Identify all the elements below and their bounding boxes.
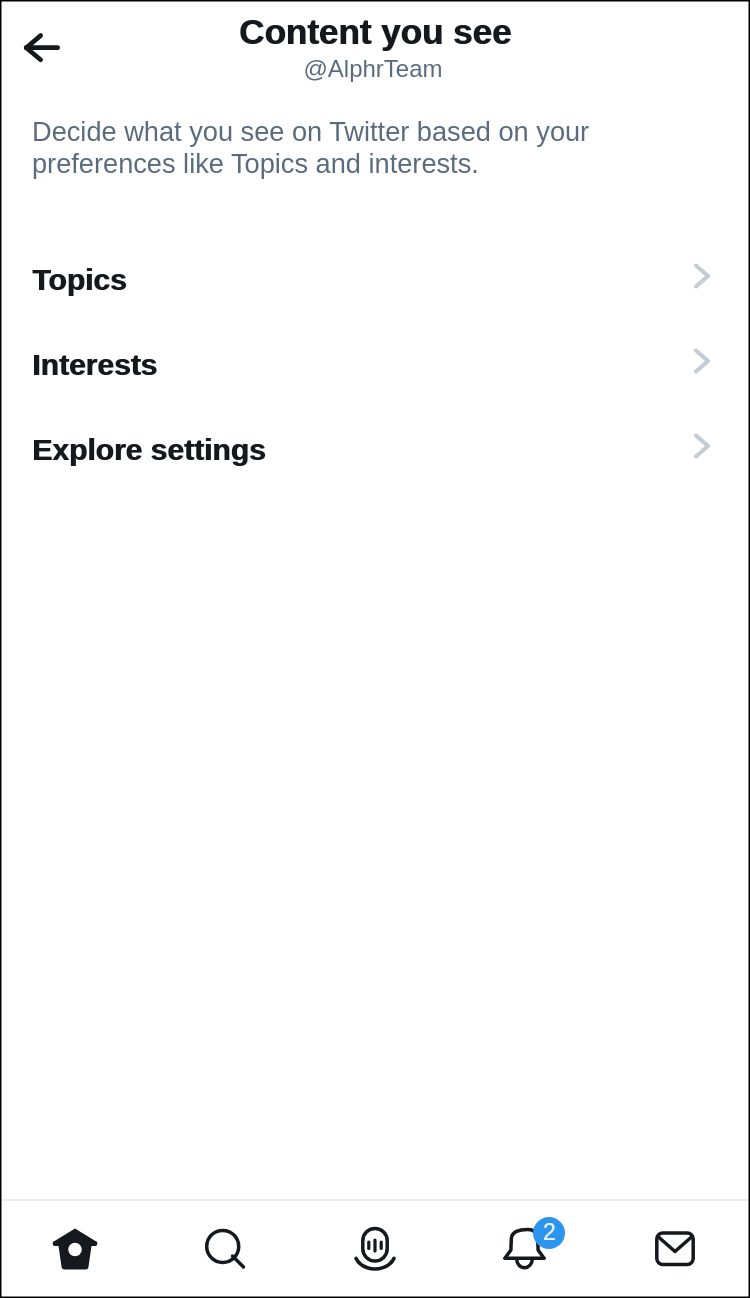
button[interactable]: Back <box>12 20 70 78</box>
button[interactable]: Interests <box>0 332 750 398</box>
staticText: 2 <box>543 1219 556 1245</box>
staticText: Interests <box>33 348 159 382</box>
staticText: Explore settings <box>32 433 266 467</box>
staticText: Explore settings <box>33 433 267 467</box>
staticText: @AlphrTeam <box>0 55 748 82</box>
button[interactable]: Explore settings <box>0 417 750 483</box>
button[interactable]: Spaces <box>300 1197 450 1298</box>
staticText: Content you see <box>0 12 750 51</box>
button[interactable]: Search <box>150 1197 300 1298</box>
button[interactable]: Notifications <box>450 1197 600 1298</box>
staticText: Topics <box>33 263 128 297</box>
button[interactable]: Messages <box>600 1197 750 1298</box>
staticText: Decide what you see on Twitter based on … <box>32 116 590 179</box>
staticText: Content you see <box>1 12 750 51</box>
staticText: Interests <box>32 348 158 382</box>
button[interactable]: Home <box>0 1197 150 1298</box>
button[interactable]: Topics <box>0 247 750 313</box>
staticText: Topics <box>32 263 127 297</box>
